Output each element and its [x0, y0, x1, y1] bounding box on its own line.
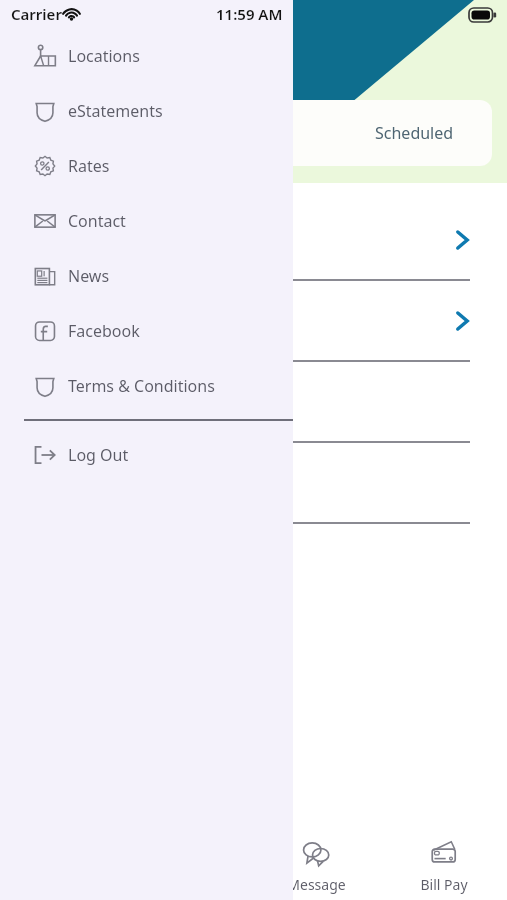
staticText: Message [287, 875, 346, 894]
button[interactable]: eStatements [0, 83, 293, 138]
button[interactable]: Rates [0, 138, 293, 193]
staticText: News [68, 265, 110, 287]
button[interactable]: Pending [180, 100, 336, 166]
staticText: Scheduled [375, 122, 454, 144]
staticText: 11:59 AM [216, 4, 283, 24]
button[interactable]: News [0, 248, 293, 303]
button[interactable] [16, 362, 490, 443]
staticText: Contact [68, 210, 126, 232]
button[interactable]: Facebook [0, 303, 293, 358]
button[interactable]: Contact [0, 193, 293, 248]
staticText: Rates [68, 155, 110, 177]
button[interactable]: Bill Pay [380, 820, 507, 900]
staticText: eStatements [68, 100, 163, 122]
staticText: Terms & Conditions [68, 375, 215, 397]
staticText: Facebook [68, 320, 140, 342]
button[interactable]: Scheduled [336, 100, 492, 166]
button[interactable]: Log Out [0, 427, 293, 482]
other: Open details [456, 230, 469, 250]
staticText: Bill Pay [420, 875, 468, 894]
button[interactable]: Message [253, 820, 380, 900]
button[interactable]: Open details [16, 200, 490, 281]
staticText: Locations [68, 45, 140, 67]
other: Open details [456, 311, 469, 331]
button[interactable]: Terms & Conditions [0, 358, 293, 413]
button[interactable]: Locations [0, 28, 293, 83]
button[interactable] [16, 443, 490, 524]
button[interactable]: Open details [16, 281, 490, 362]
staticText: Log Out [68, 444, 129, 466]
staticText: Carrier [11, 4, 62, 24]
